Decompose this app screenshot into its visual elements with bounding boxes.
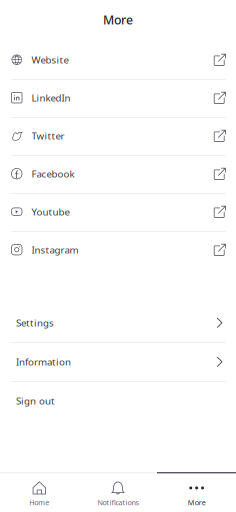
button[interactable]: LinkedIn [0, 80, 236, 118]
button[interactable]: More [157, 473, 236, 512]
button[interactable]: Settings [0, 304, 236, 343]
staticText: Information [16, 355, 71, 368]
button[interactable]: Sign out [0, 382, 236, 421]
staticText: More [103, 11, 133, 28]
staticText: LinkedIn [31, 91, 70, 104]
staticText: Twitter [31, 129, 64, 142]
staticText: More [188, 497, 206, 507]
button[interactable]: Facebook [0, 156, 236, 194]
staticText: Facebook [31, 167, 74, 180]
staticText: Instagram [31, 243, 78, 256]
staticText: Sign out [16, 394, 55, 407]
button[interactable]: Information [0, 343, 236, 382]
button[interactable]: Notifications [79, 473, 157, 512]
button[interactable]: Instagram [0, 232, 236, 270]
staticText: Website [31, 53, 68, 66]
staticText: Settings [16, 316, 54, 329]
button[interactable]: Website [0, 42, 236, 80]
staticText: Home [29, 497, 49, 507]
staticText: Notifications [97, 497, 138, 507]
button[interactable]: Youtube [0, 194, 236, 232]
staticText: Youtube [31, 205, 69, 218]
button[interactable]: Twitter [0, 118, 236, 156]
button[interactable]: Home [0, 473, 79, 512]
